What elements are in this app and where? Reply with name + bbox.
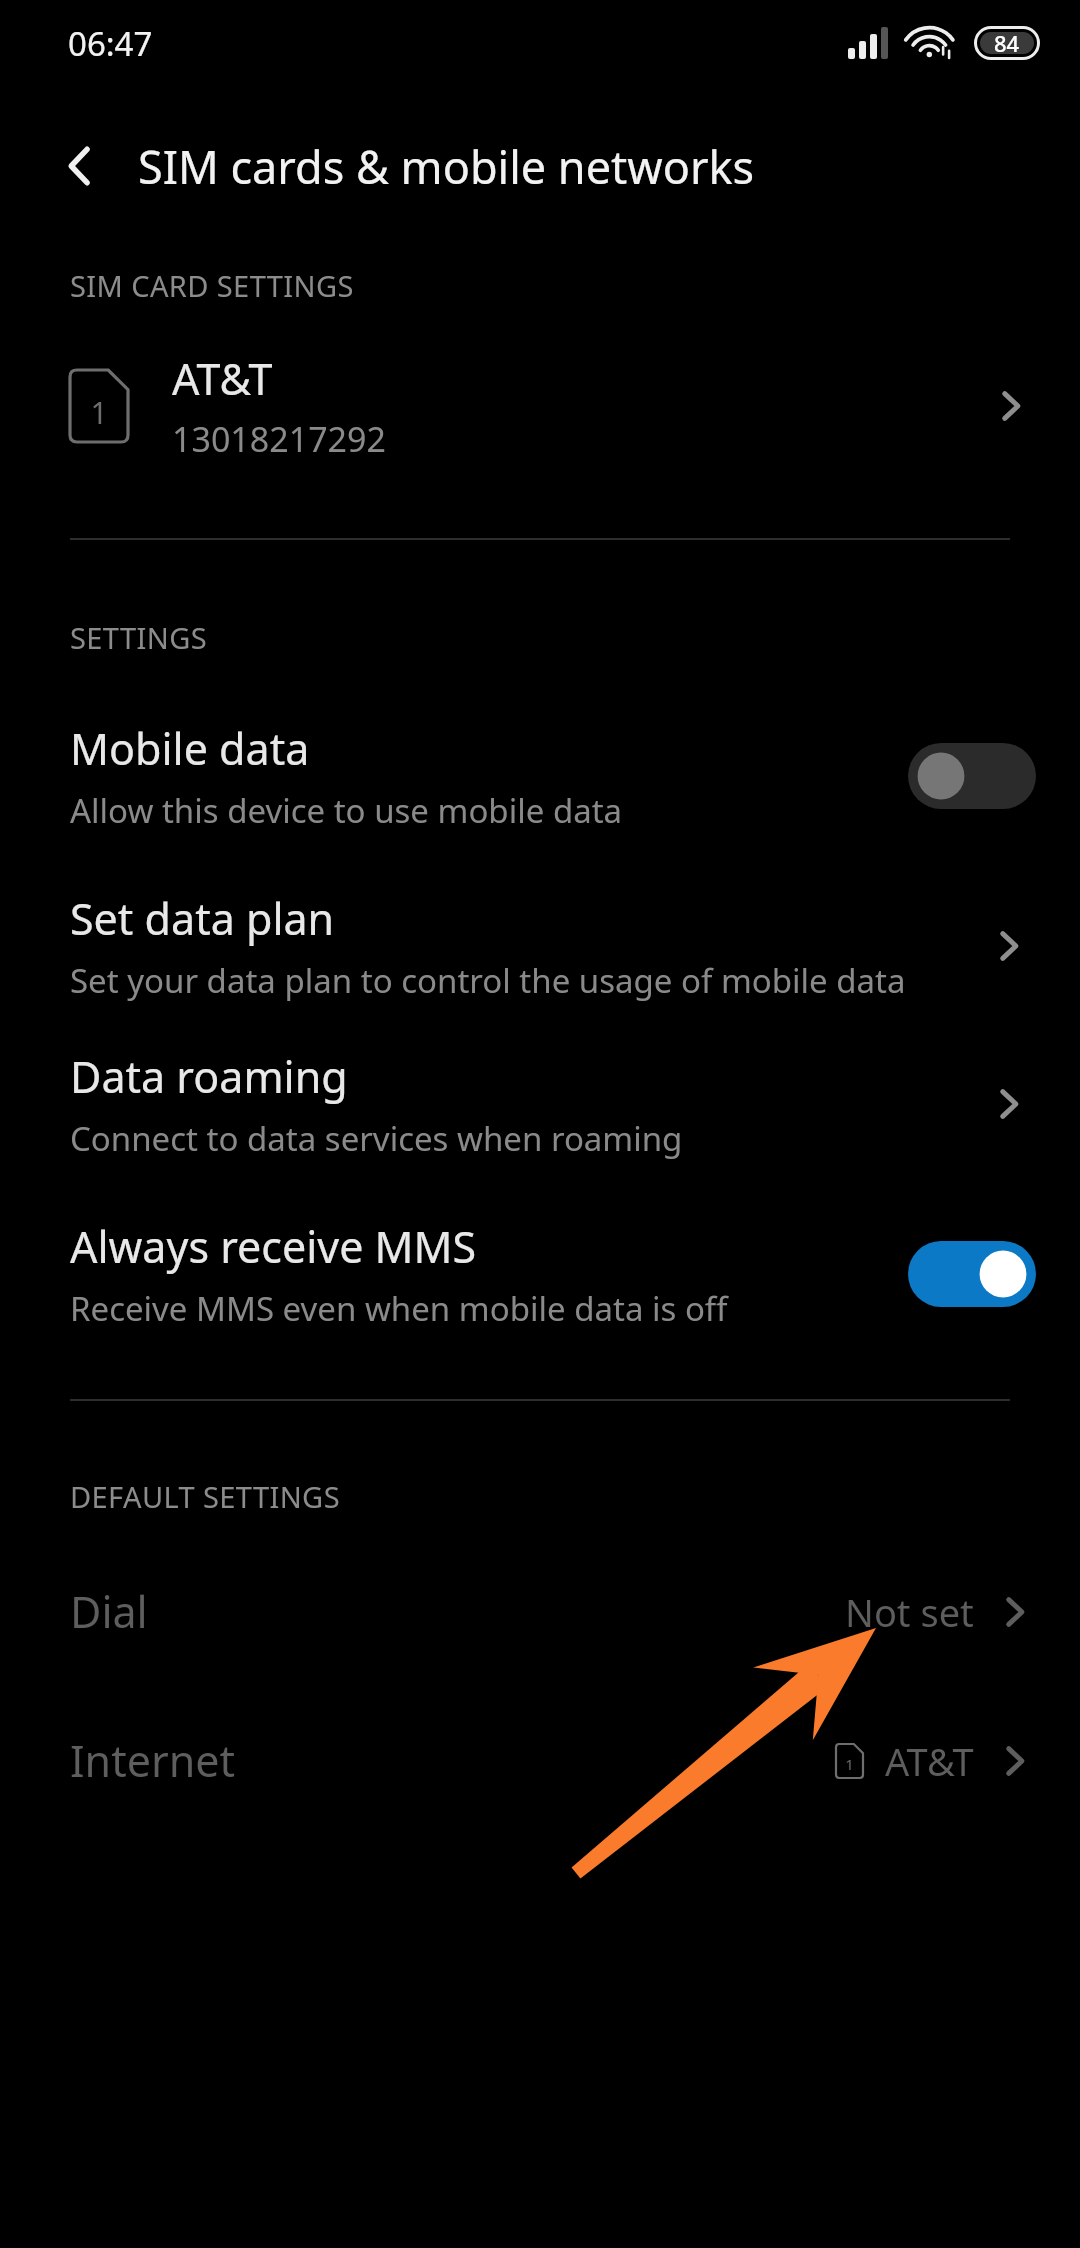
staticText: SIM cards & mobile networks	[138, 136, 755, 197]
button[interactable]: Always receive MMS	[0, 1217, 1080, 1331]
button[interactable]: Toggle on	[908, 1241, 1036, 1307]
staticText: Connect to data services when roaming	[70, 1116, 964, 1161]
staticText: AT&T	[885, 1735, 974, 1787]
button[interactable]: Toggle off	[908, 743, 1036, 809]
staticText: DEFAULT SETTINGS	[70, 1477, 340, 1516]
staticText: 1	[845, 1754, 854, 1774]
button[interactable]: Mobile data	[0, 719, 1080, 833]
staticText: Allow this device to use mobile data	[70, 788, 892, 833]
button[interactable]: Back	[44, 130, 116, 202]
staticText: Data roaming	[70, 1047, 348, 1106]
button[interactable]: Dial	[0, 1582, 1080, 1641]
staticText: 13018217292	[172, 416, 386, 462]
staticText: Always receive MMS	[70, 1217, 477, 1276]
staticText: Set data plan	[70, 889, 335, 948]
staticText: Internet	[70, 1731, 836, 1790]
button[interactable]: Set data plan	[0, 889, 1080, 1003]
staticText: Dial	[70, 1582, 845, 1641]
staticText: Receive MMS even when mobile data is off	[70, 1286, 892, 1331]
button[interactable]: 1	[0, 349, 1080, 462]
staticText: SIM CARD SETTINGS	[70, 266, 354, 305]
staticText: SETTINGS	[70, 618, 207, 657]
staticText: Set your data plan to control the usage …	[70, 958, 910, 1003]
staticText: 06:47	[68, 21, 153, 66]
button[interactable]: Data roaming	[0, 1047, 1080, 1161]
staticText: AT&T	[172, 349, 273, 408]
staticText: 84	[994, 28, 1020, 58]
staticText: Mobile data	[70, 719, 310, 778]
staticText: 1	[90, 392, 108, 433]
button[interactable]: Internet	[0, 1731, 1080, 1790]
staticText: Not set	[845, 1586, 974, 1638]
